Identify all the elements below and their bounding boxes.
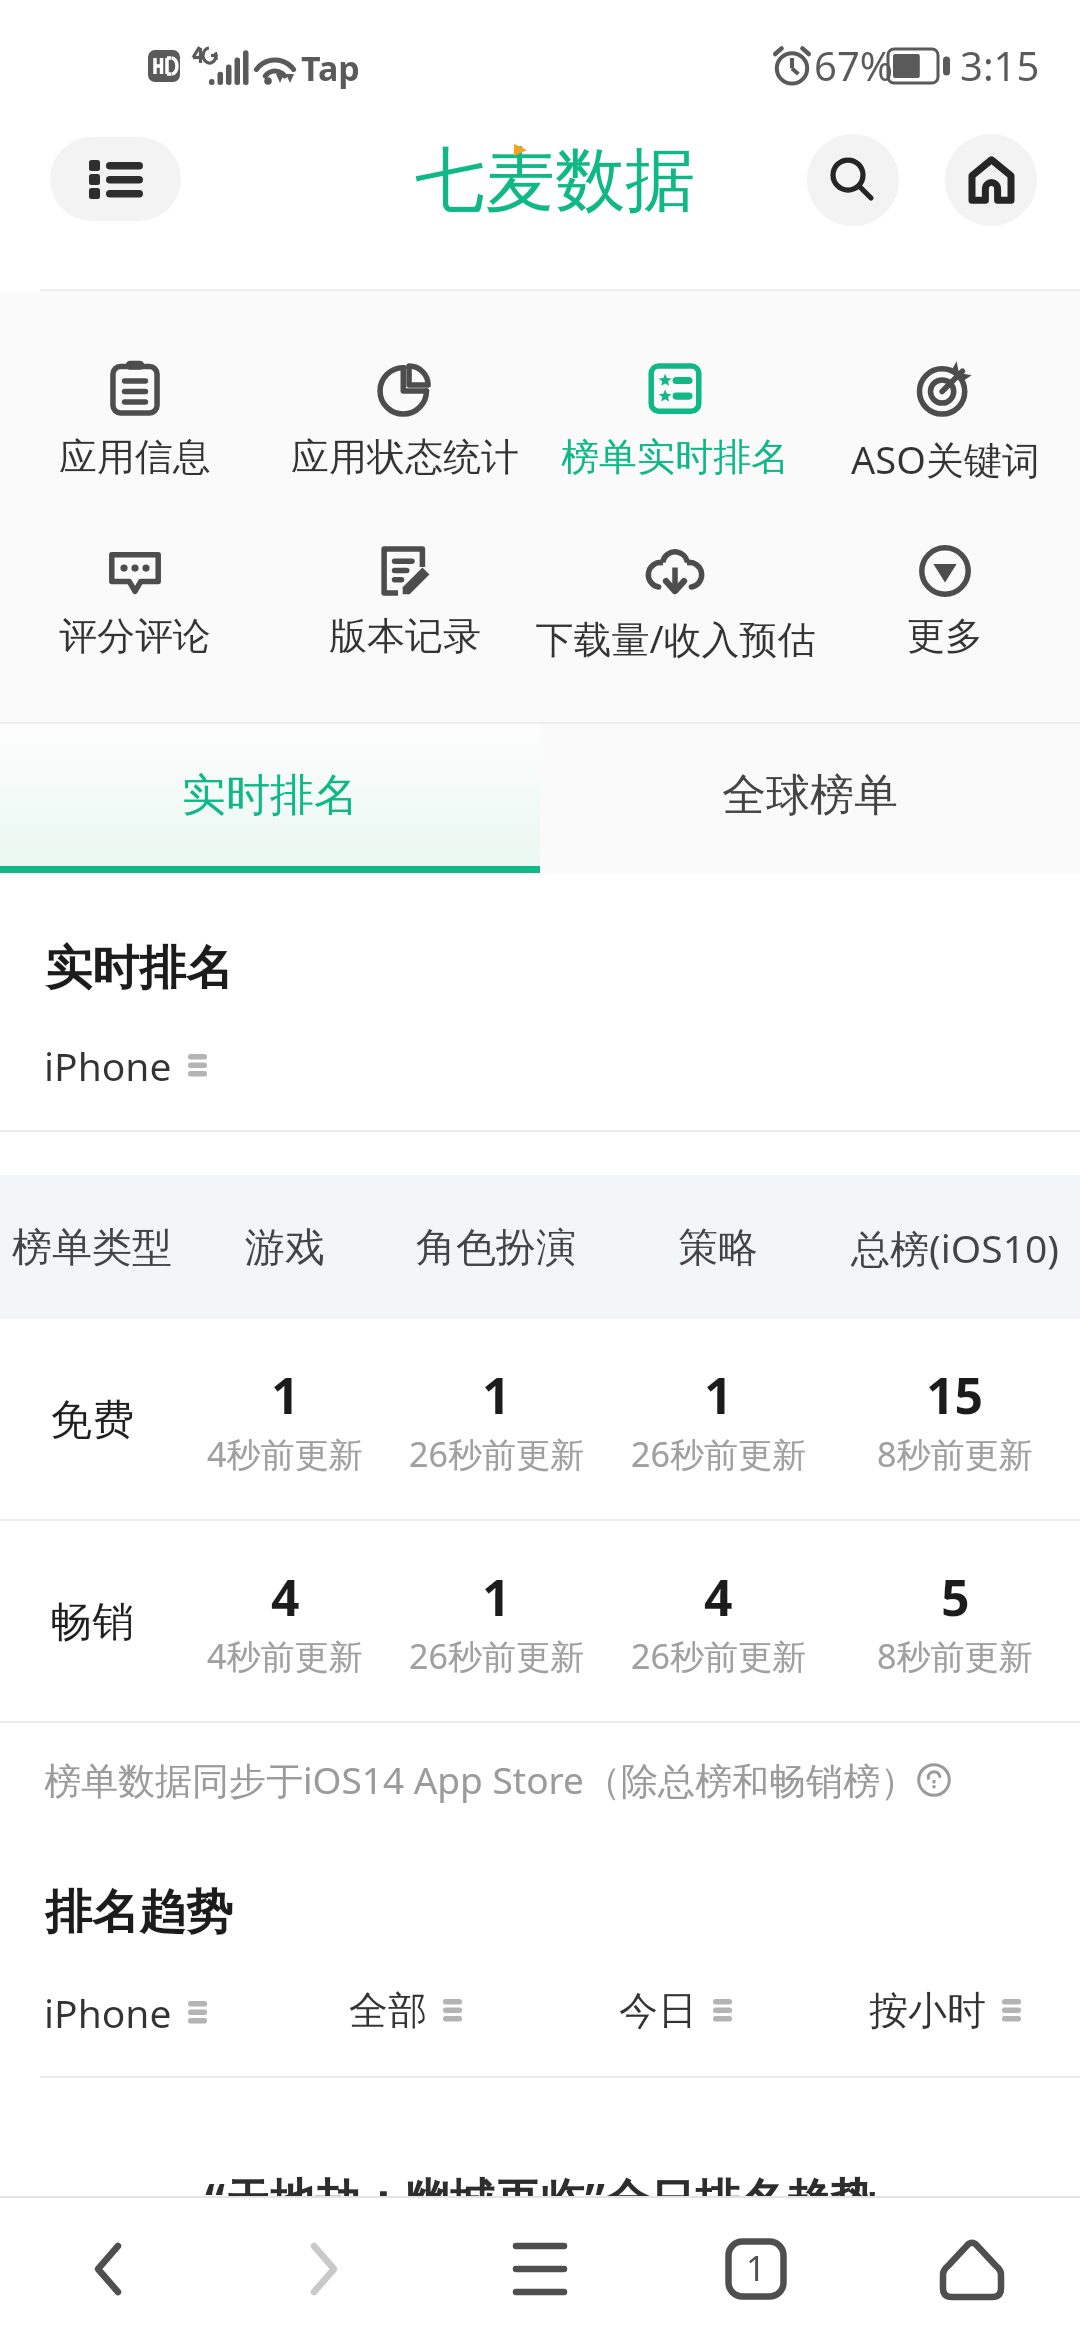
button[interactable]: Search [807, 134, 899, 226]
button[interactable]: 实时排名 [0, 724, 540, 873]
staticText: 5 [941, 1563, 970, 1631]
staticText: 免费 [50, 1394, 134, 1447]
staticText: 游戏 [245, 1222, 325, 1272]
staticText: 4 [704, 1563, 733, 1631]
staticText: 15 [926, 1361, 984, 1429]
staticText: 应用信息 [59, 433, 211, 481]
staticText: 排名趋势 [45, 1883, 233, 1942]
button[interactable]: ASO关键词 [810, 291, 1080, 472]
staticText: 4秒前更新 [207, 1431, 363, 1477]
staticText: 更多 [907, 612, 983, 660]
button[interactable]: Menu [50, 137, 181, 221]
button[interactable]: Home [864, 2198, 1080, 2340]
staticText: 今日 [619, 1986, 697, 2035]
button[interactable]: 全球榜单 [540, 724, 1080, 873]
staticText: 畅销 [50, 1596, 134, 1649]
staticText: 67% [814, 38, 893, 92]
button[interactable]: 全部 [270, 1986, 540, 2035]
staticText: 按小时 [869, 1986, 986, 2035]
staticText: 26秒前更新 [409, 1633, 584, 1679]
staticText: 8秒前更新 [877, 1633, 1033, 1679]
staticText: 应用状态统计 [291, 433, 519, 481]
staticText: 4 [271, 1563, 300, 1631]
staticText: 七麦数据 [415, 137, 695, 225]
staticText: 8秒前更新 [877, 1431, 1033, 1477]
button[interactable]: 应用信息 [0, 291, 270, 472]
staticText: 全部 [349, 1986, 427, 2035]
staticText: 26秒前更新 [409, 1431, 584, 1477]
staticText: 评分评论 [59, 612, 211, 660]
button[interactable]: Tabs [648, 2198, 864, 2340]
staticText: 1 [271, 1361, 300, 1429]
button[interactable]: 榜单实时排名 [540, 291, 810, 472]
button[interactable]: iPhone [0, 1986, 270, 2039]
staticText: 总榜(iOS10) [851, 1221, 1059, 1274]
staticText: 策略 [678, 1222, 758, 1272]
staticText: 1 [704, 1361, 733, 1429]
button[interactable]: Menu [432, 2198, 648, 2340]
staticText: 1 [746, 2245, 766, 2291]
button[interactable]: Forward [216, 2198, 432, 2340]
staticText: 26秒前更新 [631, 1431, 806, 1477]
button[interactable]: 按小时 [810, 1986, 1080, 2035]
button[interactable]: 评分评论 [0, 472, 270, 653]
button[interactable]: Back [0, 2198, 216, 2340]
staticText: 榜单类型 [12, 1222, 172, 1272]
staticText: 角色扮演 [416, 1222, 576, 1272]
staticText: 1 [482, 1563, 511, 1631]
staticText: 实时排名 [182, 768, 358, 823]
staticText: 实时排名 [45, 939, 233, 998]
button[interactable]: 更多 [810, 472, 1080, 653]
button[interactable]: 版本记录 [270, 472, 540, 653]
staticText: ASO关键词 [851, 433, 1040, 485]
staticText: iPhone [44, 1986, 172, 2039]
staticText: “天地劫：幽城再临”全日排名趋势 [0, 2168, 1080, 2229]
staticText: 3:15 [960, 38, 1040, 92]
staticText: Tap [301, 45, 360, 91]
button[interactable]: iPhone [44, 1039, 207, 1092]
staticText: 26秒前更新 [631, 1633, 806, 1679]
staticText: 榜单实时排名 [561, 433, 789, 481]
staticText: 下载量/收入预估 [535, 612, 816, 664]
staticText: 榜单数据同步于iOS14 App Store（除总榜和畅销榜） [44, 1754, 917, 1805]
button[interactable]: 今日 [540, 1986, 810, 2035]
staticText: 版本记录 [329, 612, 481, 660]
button[interactable]: 下载量/收入预估 [540, 472, 810, 653]
button[interactable]: Home [945, 134, 1037, 226]
staticText: 4秒前更新 [207, 1633, 363, 1679]
staticText: iPhone [44, 1039, 172, 1092]
staticText: 1 [482, 1361, 511, 1429]
button[interactable]: 应用状态统计 [270, 291, 540, 472]
staticText: 全球榜单 [722, 768, 898, 823]
